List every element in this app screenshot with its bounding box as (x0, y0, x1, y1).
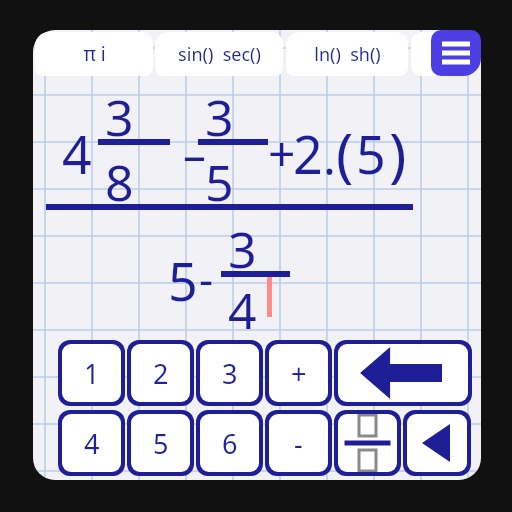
staticText: ) (389, 114, 407, 193)
staticText: 4 (228, 276, 257, 344)
staticText: - (294, 425, 303, 462)
staticText: π i (83, 41, 106, 67)
button[interactable]: Move left (403, 410, 471, 476)
staticText: 5 (356, 118, 386, 189)
staticText: 2 (153, 355, 169, 392)
staticText: 8 (105, 148, 134, 216)
button[interactable]: 6 (196, 410, 263, 476)
staticText: 3 (105, 83, 134, 151)
staticText: 3 (205, 83, 234, 151)
staticText: 5 (168, 245, 198, 316)
staticText: ( (336, 114, 354, 193)
button[interactable]: Fraction (334, 410, 401, 476)
staticText: + (291, 355, 307, 392)
button[interactable]: ln() sh() (286, 32, 408, 76)
button[interactable]: π i (35, 32, 153, 76)
staticText: 4 (62, 118, 92, 189)
staticText: – (183, 122, 206, 185)
button[interactable]: - (265, 410, 332, 476)
button[interactable]: Menu (431, 30, 481, 76)
staticText: 1 (84, 355, 100, 392)
button[interactable]: 5 (127, 410, 194, 476)
button[interactable]: Backspace (334, 340, 472, 406)
button[interactable]: 4 (58, 410, 125, 476)
staticText: 6 (222, 425, 238, 462)
staticText: 3 (228, 215, 257, 283)
button[interactable]: 3 (196, 340, 263, 406)
staticText: ln() sh() (314, 42, 381, 67)
staticText: 5 (153, 425, 169, 462)
button[interactable]: 2 (127, 340, 194, 406)
button[interactable]: sin() sec() (155, 32, 283, 76)
staticText: - (199, 248, 214, 308)
staticText: + (268, 120, 296, 185)
staticText: . (323, 124, 336, 189)
button[interactable] (411, 32, 441, 76)
staticText: 3 (222, 355, 238, 392)
staticText: sin() sec() (178, 42, 261, 67)
staticText: 5 (205, 148, 234, 216)
staticText: 2 (293, 118, 323, 189)
button[interactable]: 1 (58, 340, 125, 406)
staticText: 4 (84, 425, 100, 462)
button[interactable]: + (265, 340, 332, 406)
